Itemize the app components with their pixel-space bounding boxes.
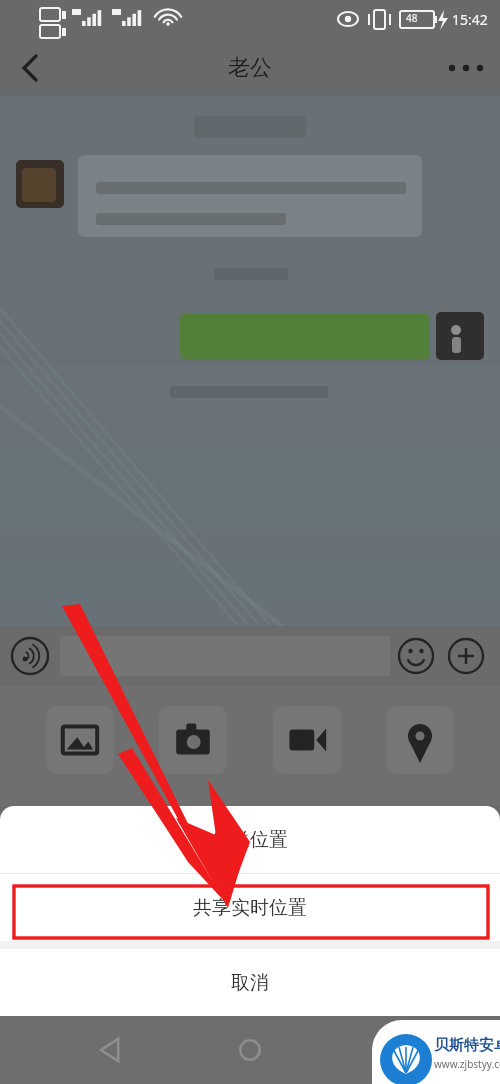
staticText: 共享实时位置 [193,896,307,920]
staticText: 取消 [231,971,269,995]
button[interactable]: More functions [444,634,488,678]
button[interactable]: 共享实时位置 [0,874,500,941]
button[interactable]: Back [85,1023,139,1077]
button[interactable]: 取消 [0,949,500,1016]
staticText: 48 [406,11,418,25]
button[interactable]: Home [223,1023,277,1077]
button[interactable]: Camera [159,706,227,774]
staticText: 发送位置 [212,828,288,852]
staticText: 15:42 [452,10,488,29]
button[interactable]: Video call [273,706,341,774]
button[interactable]: 发送位置 [0,806,500,873]
staticText: www.zjbstyy.com [434,1057,500,1071]
button[interactable]: Emoji [394,634,438,678]
button[interactable] [60,636,390,676]
button[interactable]: More options [438,40,494,96]
button[interactable]: Location [386,706,454,774]
button[interactable]: Photos [46,706,114,774]
staticText: 贝斯特安卓网 [434,1036,500,1055]
button[interactable]: Back [4,42,56,94]
staticText: 老公 [228,54,272,82]
button[interactable]: Recent apps [362,1023,416,1077]
button[interactable]: Voice input [8,634,52,678]
